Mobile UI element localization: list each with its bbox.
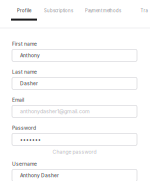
button[interactable]: Tra <box>138 0 150 21</box>
button[interactable]: Dasher <box>12 77 137 89</box>
staticText: ••••••• <box>20 136 41 142</box>
staticText: Tra <box>140 8 147 13</box>
button[interactable]: anthonydasher1@gmail.com <box>12 105 137 117</box>
staticText: Payment methods <box>85 8 121 13</box>
staticText: Password <box>12 125 36 131</box>
staticText: Email <box>12 97 24 103</box>
button[interactable]: Profile <box>11 0 37 21</box>
button[interactable]: Subscriptions <box>42 0 75 21</box>
button[interactable]: Payment methods <box>82 0 124 21</box>
staticText: Username <box>12 161 37 167</box>
staticText: anthonydasher1@gmail.com <box>20 108 90 115</box>
button[interactable]: Anthony <box>12 49 137 61</box>
staticText: Change password <box>52 149 96 155</box>
button[interactable]: Anthony Dasher <box>12 169 137 181</box>
button[interactable]: ••••••• <box>12 133 137 145</box>
staticText: Profile <box>17 8 31 13</box>
staticText: Last name <box>12 69 37 75</box>
staticText: Anthony Dasher <box>20 172 59 178</box>
staticText: Dasher <box>20 80 38 86</box>
staticText: First name <box>12 41 37 47</box>
button[interactable]: Change password <box>52 147 96 156</box>
staticText: Anthony <box>20 52 40 58</box>
staticText: Subscriptions <box>44 8 73 13</box>
